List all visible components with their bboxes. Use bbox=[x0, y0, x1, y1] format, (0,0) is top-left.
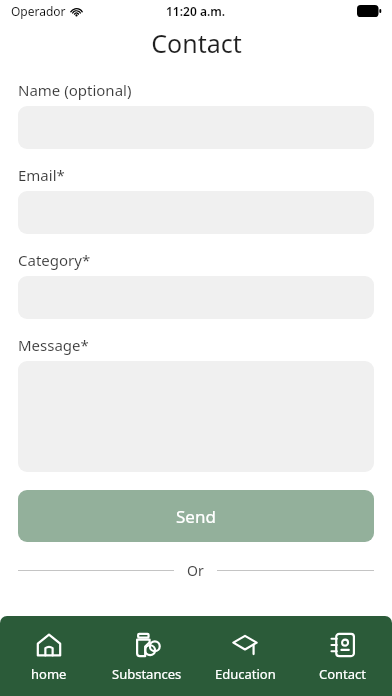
staticText: Operador bbox=[11, 3, 66, 19]
staticText: Contact bbox=[319, 665, 367, 683]
staticText: 11:20 a.m. bbox=[166, 3, 226, 19]
staticText: Message* bbox=[18, 335, 89, 355]
staticText: Contact bbox=[151, 26, 242, 60]
button[interactable]: Substances bbox=[98, 616, 196, 696]
staticText: Send bbox=[176, 505, 216, 528]
button[interactable]: home bbox=[0, 616, 98, 696]
staticText: home bbox=[31, 665, 67, 683]
staticText: Name (optional) bbox=[18, 80, 132, 100]
staticText: Or bbox=[187, 561, 204, 580]
staticText: Education bbox=[215, 665, 276, 683]
staticText: Substances bbox=[112, 665, 182, 683]
staticText: Category* bbox=[18, 250, 91, 270]
staticText: Email* bbox=[18, 165, 65, 185]
button[interactable]: Send bbox=[18, 490, 374, 542]
button[interactable]: Contact bbox=[294, 616, 392, 696]
button[interactable]: Education bbox=[196, 616, 294, 696]
